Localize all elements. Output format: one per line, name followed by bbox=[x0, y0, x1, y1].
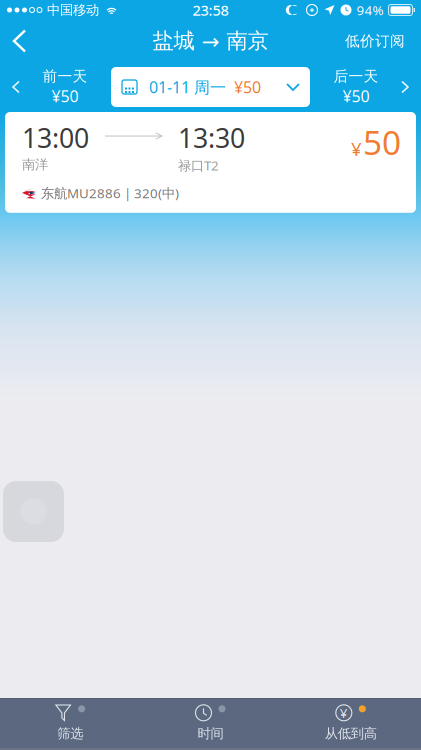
staticText: 中国移动 bbox=[47, 2, 99, 18]
staticText: 50 bbox=[363, 120, 401, 164]
staticText: ¥ bbox=[340, 704, 348, 722]
staticText: 从低到高 bbox=[325, 725, 377, 742]
button[interactable]: 13:00 bbox=[5, 112, 416, 213]
button[interactable]: 后一天 bbox=[310, 62, 421, 112]
button[interactable]: ¥ bbox=[281, 697, 421, 749]
staticText: 23:58 bbox=[192, 0, 228, 20]
button[interactable]: 时间 bbox=[140, 697, 281, 749]
staticText: 13:00 bbox=[22, 120, 89, 155]
staticText: 南洋 bbox=[22, 156, 48, 173]
staticText: ¥50 bbox=[51, 85, 78, 107]
button[interactable]: 01-11 周一 bbox=[111, 62, 310, 112]
staticText: 低价订阅 bbox=[345, 32, 405, 50]
staticText: 13:30 bbox=[178, 120, 245, 155]
staticText: ¥ bbox=[351, 136, 362, 161]
button[interactable]: Back bbox=[0, 20, 41, 62]
staticText: 禄口T2 bbox=[178, 156, 219, 174]
staticText: 前一天 bbox=[42, 67, 87, 85]
staticText: 01-11 周一 bbox=[149, 76, 226, 98]
staticText: ¥50 bbox=[234, 76, 261, 98]
staticText: 后一天 bbox=[333, 67, 378, 85]
staticText: 筛选 bbox=[57, 725, 83, 742]
button[interactable]: 前一天 bbox=[0, 62, 111, 112]
staticText: 盐城 → 南京 bbox=[152, 28, 268, 54]
staticText: 东航MU2886 | 320(中) bbox=[41, 184, 179, 202]
staticText: 94% bbox=[356, 1, 383, 19]
staticText: 时间 bbox=[197, 725, 223, 742]
staticText: ¥50 bbox=[342, 85, 369, 107]
button[interactable]: 低价订阅 bbox=[329, 20, 421, 62]
button[interactable]: 筛选 bbox=[0, 697, 140, 749]
